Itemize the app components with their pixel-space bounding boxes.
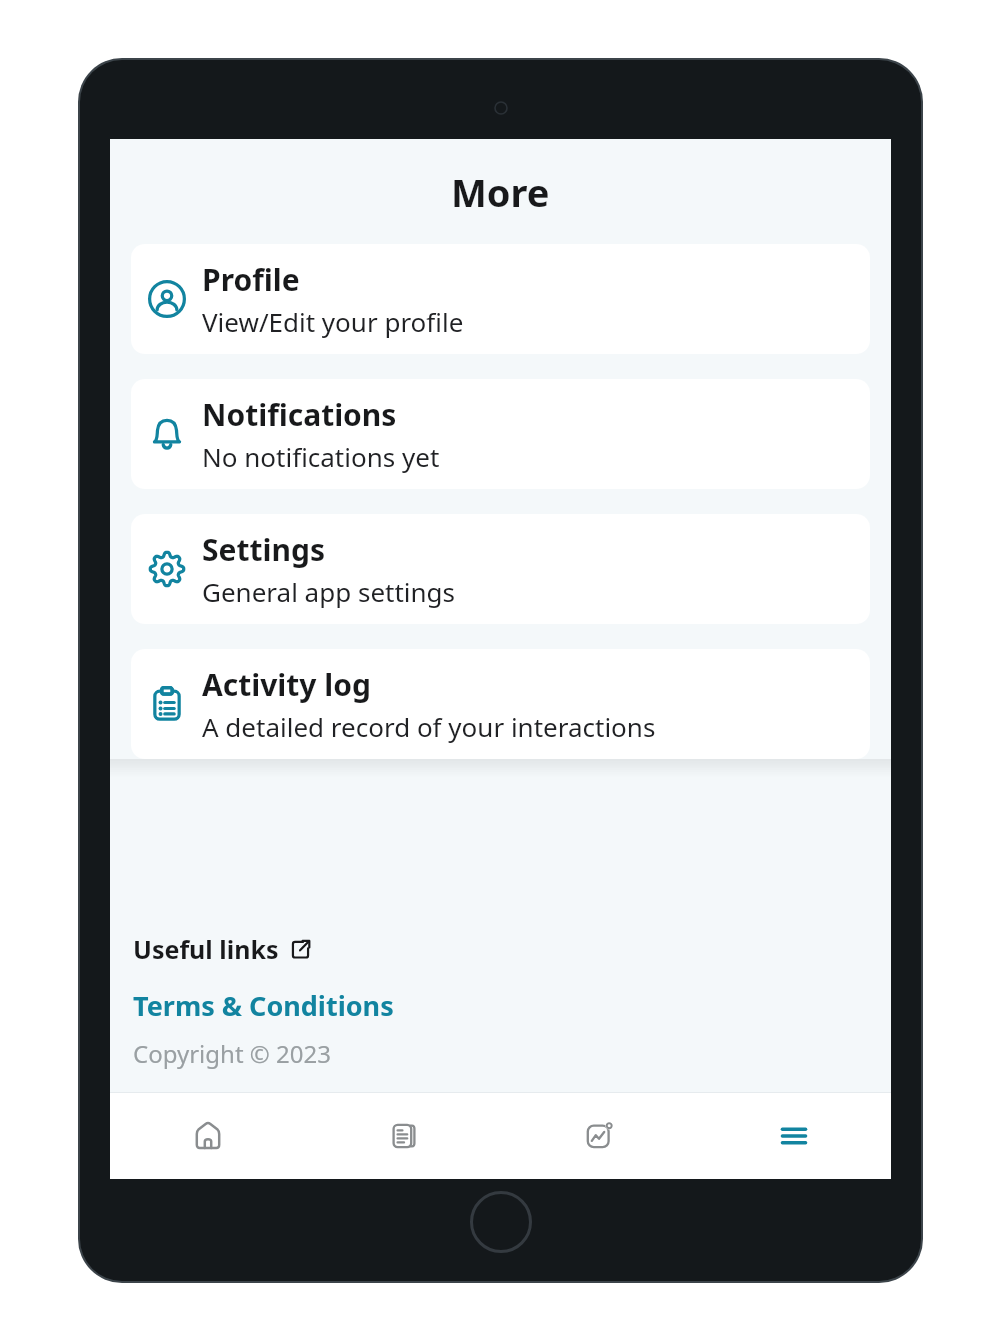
staticText: General app settings (202, 574, 456, 609)
staticText: Settings (202, 529, 325, 570)
staticText: Profile (202, 259, 300, 300)
button[interactable]: Profile (131, 244, 870, 354)
staticText: More (451, 166, 550, 218)
staticText: No notifications yet (202, 439, 440, 474)
staticText: A detailed record of your interactions (202, 709, 656, 744)
button[interactable]: Activity log (131, 649, 870, 759)
button[interactable]: Settings (131, 514, 870, 624)
button[interactable]: Useful links (131, 928, 313, 970)
staticText: Copyright © 2023 (133, 1037, 331, 1070)
button[interactable]: Documents (306, 1092, 501, 1179)
button[interactable]: Home (110, 1092, 306, 1179)
staticText: Useful links (133, 932, 279, 966)
staticText: View/Edit your profile (202, 304, 464, 339)
staticText: Terms & Conditions (133, 987, 394, 1024)
button[interactable]: Menu (696, 1092, 891, 1179)
staticText: Activity log (202, 664, 371, 705)
staticText: Notifications (202, 394, 397, 435)
button[interactable]: Insights (501, 1092, 696, 1179)
button[interactable]: Notifications (131, 379, 870, 489)
button[interactable]: Terms & Conditions (131, 985, 396, 1026)
